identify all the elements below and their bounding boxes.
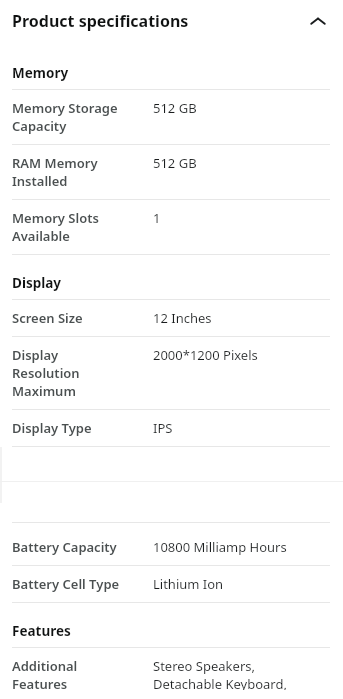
- button[interactable]: Memory Storage Capacity: [0, 90, 343, 144]
- staticText: Display: [12, 274, 62, 292]
- button[interactable]: RAM Memory Installed: [0, 145, 343, 199]
- staticText: Battery Capacity: [12, 538, 117, 556]
- staticText: 2000*1200 Pixels: [153, 346, 258, 364]
- staticText: 12 Inches: [153, 309, 212, 327]
- staticText: Display Type: [12, 419, 92, 437]
- staticText: Additional Features: [12, 657, 78, 690]
- staticText: Screen Size: [12, 309, 83, 327]
- button[interactable]: Display Resolution Maximum: [0, 337, 343, 409]
- staticText: Memory: [12, 64, 69, 82]
- other: Collapse section: [305, 8, 331, 34]
- staticText: 1: [153, 209, 161, 227]
- button[interactable]: Memory Slots Available: [0, 200, 343, 254]
- staticText: Memory Storage Capacity: [12, 99, 118, 135]
- button[interactable]: Screen Size: [0, 300, 343, 336]
- staticText: Product specifications: [12, 10, 305, 32]
- staticText: 512 GB: [153, 154, 197, 172]
- button[interactable]: Product specifications: [0, 0, 343, 40]
- staticText: Display Resolution Maximum: [12, 346, 80, 400]
- staticText: IPS: [153, 419, 173, 437]
- staticText: RAM Memory Installed: [12, 154, 98, 190]
- button[interactable]: Display Type: [0, 410, 343, 446]
- button[interactable]: Battery Capacity: [0, 529, 343, 565]
- staticText: Features: [12, 622, 71, 640]
- staticText: Battery Cell Type: [12, 575, 120, 593]
- button[interactable]: Battery Cell Type: [0, 566, 343, 602]
- staticText: Memory Slots Available: [12, 209, 99, 245]
- button[interactable]: Additional Features: [0, 648, 343, 699]
- staticText: 10800 Milliamp Hours: [153, 538, 287, 556]
- staticText: Stereo Speakers, Detachable Keyboard, Su…: [153, 657, 308, 690]
- staticText: 512 GB: [153, 99, 197, 117]
- staticText: Lithium Ion: [153, 575, 224, 593]
